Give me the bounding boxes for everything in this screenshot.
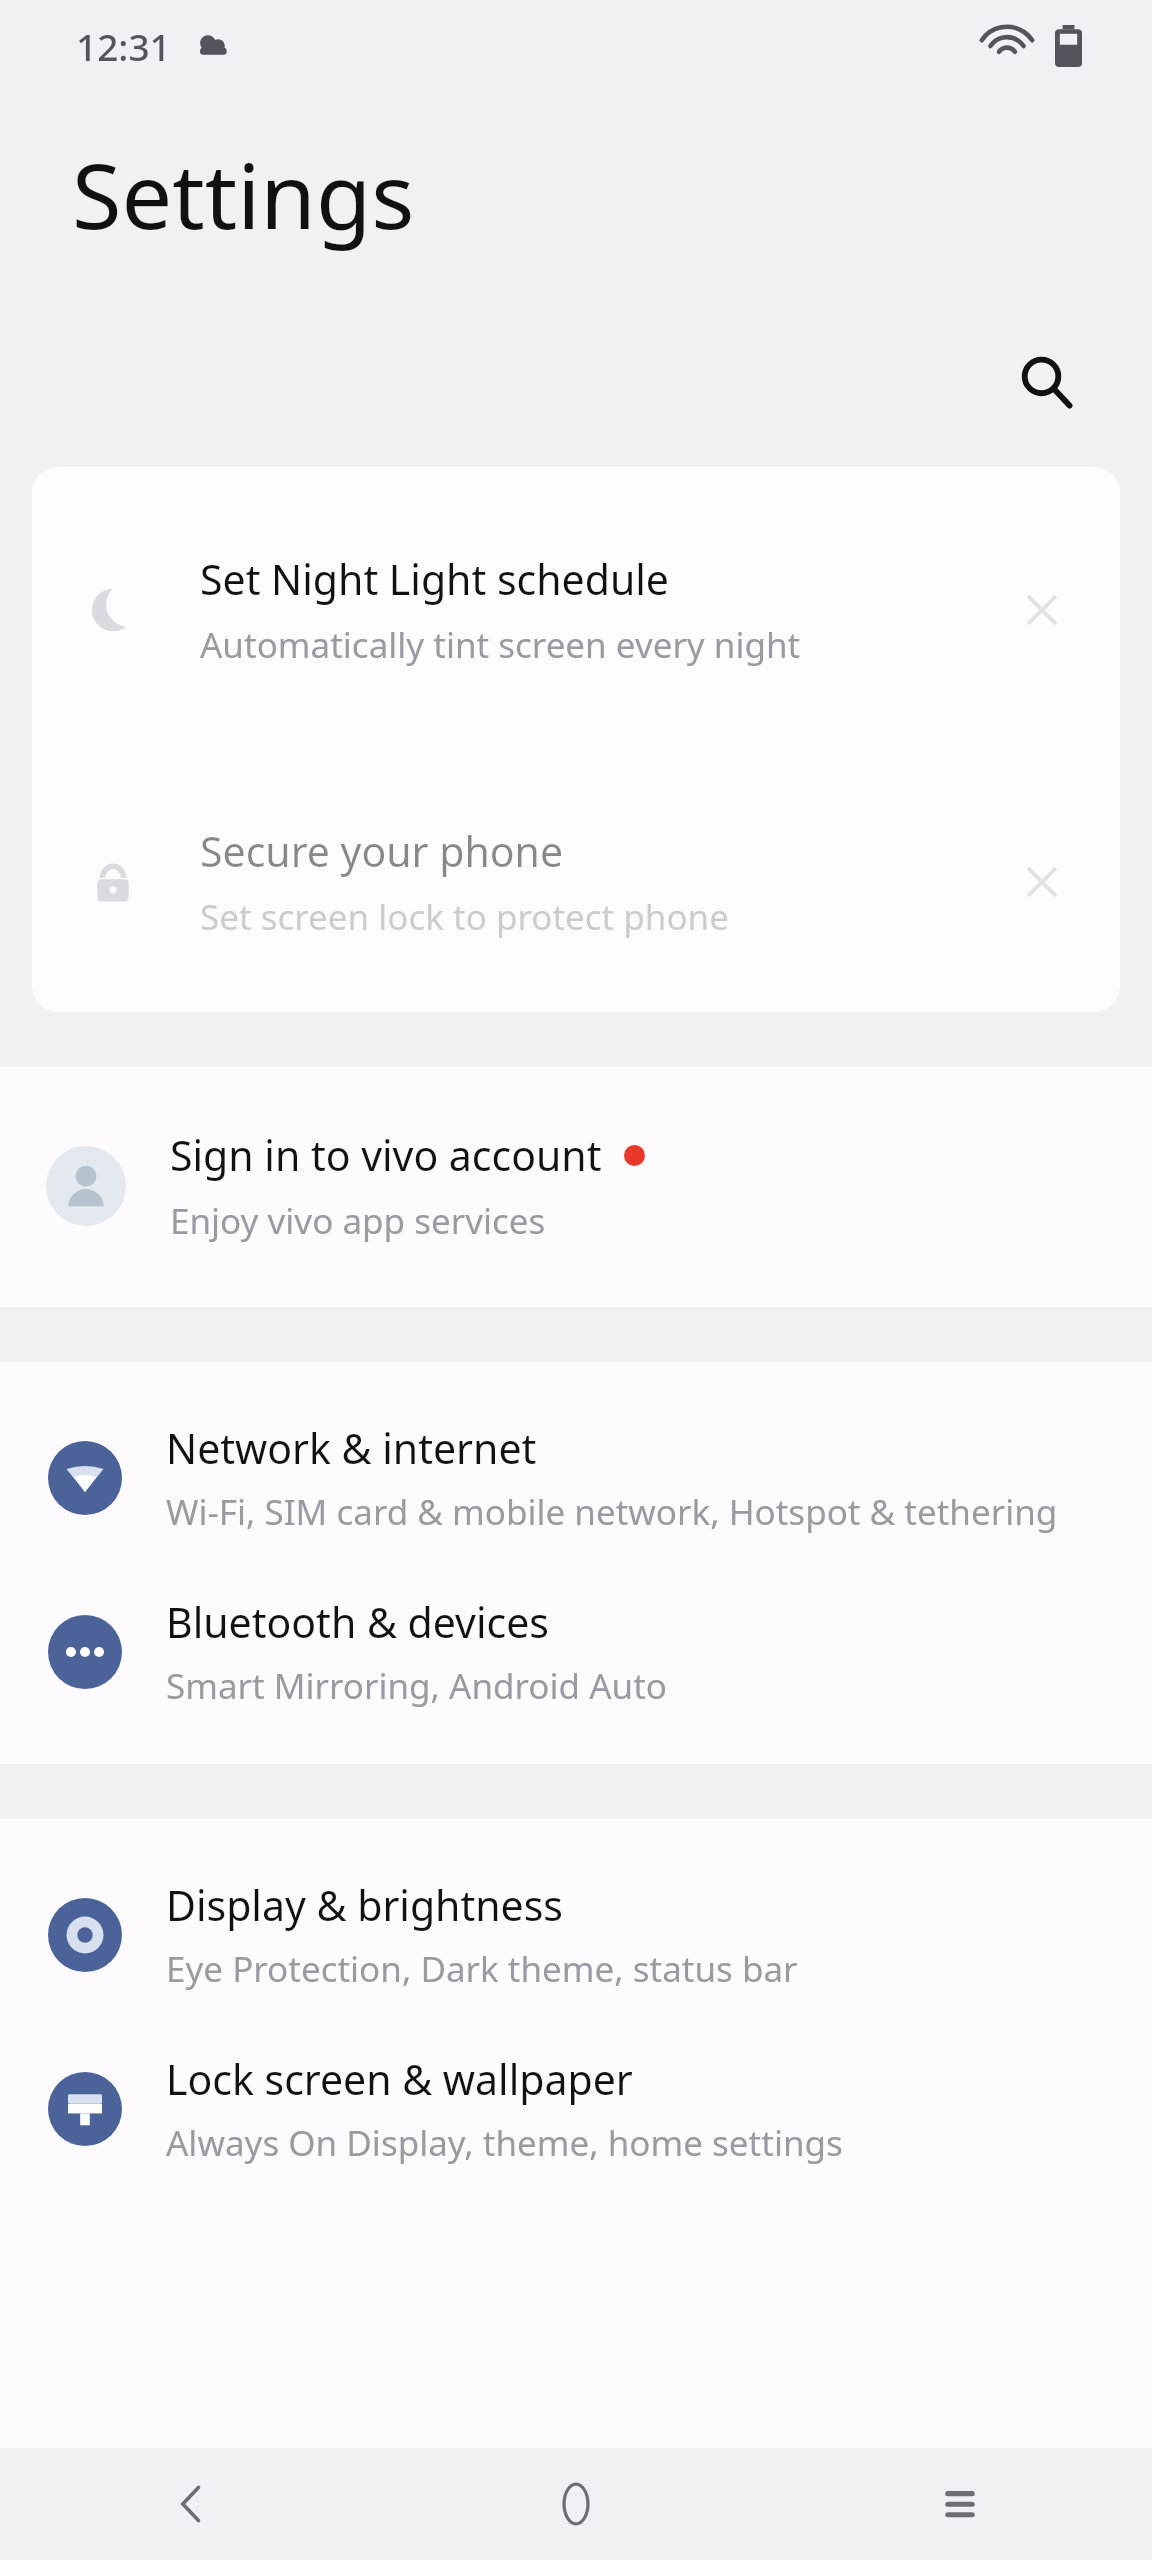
button[interactable]: Display & brightness [0, 1861, 1152, 2009]
button[interactable]: Bluetooth & devices [0, 1578, 1152, 1726]
button[interactable]: Recent apps [768, 2448, 1152, 2560]
button[interactable]: Set Night Light schedule [32, 467, 1120, 752]
staticText: Enjoy vivo app services [170, 1197, 546, 1245]
staticText: Always On Display, theme, home settings [166, 2119, 843, 2167]
button[interactable]: Back [0, 2448, 384, 2560]
staticText: Secure your phone [200, 823, 564, 879]
button[interactable]: Home [384, 2448, 768, 2560]
staticText: Wi-Fi, SIM card & mobile network, Hotspo… [166, 1488, 1058, 1536]
button[interactable]: Lock screen & wallpaper [0, 2035, 1152, 2183]
staticText: Network & internet [166, 1420, 537, 1476]
button[interactable]: Secure your phone [32, 752, 1120, 1012]
staticText: Set screen lock to protect phone [200, 893, 729, 941]
button[interactable]: Dismiss Secure your phone [1004, 844, 1080, 920]
staticText: Display & brightness [166, 1877, 564, 1933]
staticText: Set Night Light schedule [200, 551, 669, 607]
staticText: Eye Protection, Dark theme, status bar [166, 1945, 798, 1993]
button[interactable]: Sign in to vivo account [0, 1107, 1152, 1265]
button[interactable]: Search settings [998, 334, 1094, 430]
staticText: Sign in to vivo account [170, 1127, 602, 1183]
staticText: Settings [72, 133, 415, 256]
staticText: Smart Mirroring, Android Auto [166, 1662, 667, 1710]
staticText: Bluetooth & devices [166, 1594, 549, 1650]
staticText: 12:31 [76, 21, 171, 71]
button[interactable]: Network & internet [0, 1404, 1152, 1552]
staticText: Lock screen & wallpaper [166, 2051, 633, 2107]
staticText: Automatically tint screen every night [200, 621, 801, 669]
button[interactable]: Dismiss Set Night Light schedule [1004, 572, 1080, 648]
